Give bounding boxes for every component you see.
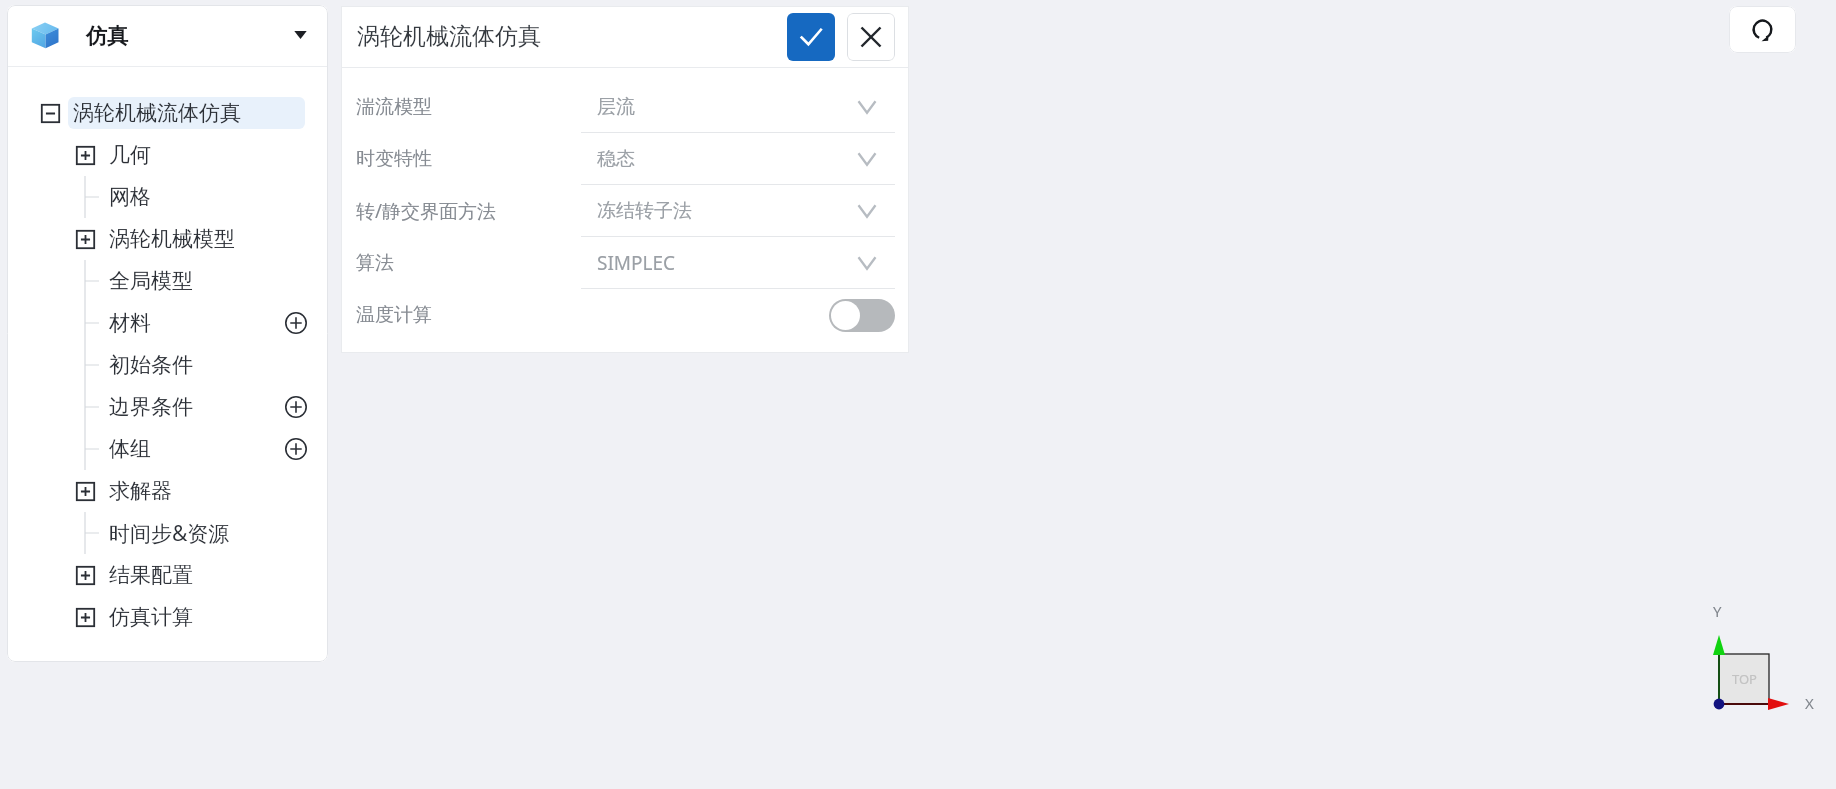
button[interactable]: 时间步&资源: [7, 512, 328, 554]
button[interactable]: 结果配置: [7, 554, 328, 596]
staticText: 时变特性: [356, 147, 432, 171]
button[interactable]: Add 材料: [280, 307, 312, 339]
staticText: 稳态: [597, 147, 635, 171]
button[interactable]: 仿真: [7, 5, 328, 66]
button[interactable]: 湍流模型: [341, 81, 909, 133]
button[interactable]: Add 体组: [280, 433, 312, 465]
staticText: 网格: [109, 184, 151, 210]
button[interactable]: 初始条件: [7, 344, 328, 386]
button[interactable]: 边界条件: [7, 386, 328, 428]
staticText: 求解器: [109, 478, 172, 504]
staticText: 材料: [109, 310, 151, 336]
staticText: 结果配置: [109, 562, 193, 588]
staticText: 涡轮机械流体仿真: [357, 22, 541, 51]
staticText: 边界条件: [109, 394, 193, 420]
staticText: 转/静交界面方法: [356, 198, 497, 224]
staticText: 仿真: [86, 23, 128, 49]
staticText: 初始条件: [109, 352, 193, 378]
button[interactable]: 温度计算: [341, 289, 909, 341]
staticText: 仿真计算: [109, 604, 193, 630]
staticText: 算法: [356, 251, 394, 275]
button[interactable]: Reset view: [1729, 6, 1796, 53]
button[interactable]: 涡轮机械流体仿真: [7, 92, 328, 134]
staticText: 冻结转子法: [597, 199, 692, 223]
button[interactable]: 时变特性: [341, 133, 909, 185]
button[interactable]: 体组: [7, 428, 328, 470]
button[interactable]: Add 边界条件: [280, 391, 312, 423]
button[interactable]: 材料: [7, 302, 328, 344]
staticText: 温度计算: [356, 303, 432, 327]
button[interactable]: 网格: [7, 176, 328, 218]
staticText: 体组: [109, 436, 151, 462]
staticText: 涡轮机械流体仿真: [73, 100, 241, 126]
button[interactable]: 几何: [7, 134, 328, 176]
button[interactable]: 涡轮机械模型: [7, 218, 328, 260]
staticText: 湍流模型: [356, 95, 432, 119]
staticText: Y: [1713, 601, 1722, 621]
button[interactable]: 转/静交界面方法: [341, 185, 909, 237]
staticText: SIMPLEC: [597, 250, 676, 276]
button[interactable]: 求解器: [7, 470, 328, 512]
staticText: TOP: [1732, 670, 1757, 688]
staticText: 层流: [597, 95, 635, 119]
button[interactable]: 仿真计算: [7, 596, 328, 638]
staticText: X: [1805, 693, 1814, 713]
button[interactable]: 全局模型: [7, 260, 328, 302]
button[interactable]: Close: [847, 13, 895, 61]
staticText: 时间步&资源: [109, 519, 230, 548]
staticText: 涡轮机械模型: [109, 226, 235, 252]
staticText: 几何: [109, 142, 151, 168]
button[interactable]: Confirm: [787, 13, 835, 61]
button[interactable]: [829, 299, 895, 332]
staticText: 全局模型: [109, 268, 193, 294]
button[interactable]: 算法: [341, 237, 909, 289]
